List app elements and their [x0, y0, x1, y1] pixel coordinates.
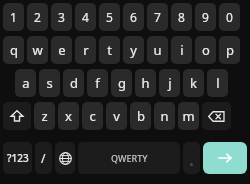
staticText: / [41, 150, 46, 166]
button[interactable]: ?123 [3, 142, 32, 174]
staticText: f [95, 74, 100, 92]
button[interactable]: 4 [75, 3, 96, 31]
staticText: 4 [82, 9, 89, 25]
staticText: w [32, 41, 43, 59]
staticText: b [137, 107, 145, 125]
button[interactable]: Backspace [202, 102, 231, 130]
staticText: p [226, 41, 234, 59]
button[interactable]: m [178, 102, 199, 130]
button[interactable]: f [87, 69, 108, 97]
button[interactable]: w [27, 36, 48, 64]
button[interactable]: Period [183, 142, 200, 174]
staticText: z [41, 107, 48, 125]
staticText: o [202, 41, 210, 59]
staticText: e [58, 41, 66, 59]
button[interactable]: s [39, 69, 60, 97]
button[interactable]: u [147, 36, 168, 64]
button[interactable]: a [15, 69, 36, 97]
button[interactable]: 0 [219, 3, 240, 31]
staticText: l [216, 74, 220, 92]
button[interactable]: e [51, 36, 72, 64]
button[interactable]: Shift [3, 102, 31, 130]
button[interactable]: i [171, 36, 192, 64]
staticText: k [190, 74, 197, 92]
button[interactable]: o [195, 36, 216, 64]
staticText: u [153, 41, 162, 59]
staticText: 9 [202, 9, 209, 25]
staticText: 8 [178, 9, 185, 25]
button[interactable]: n [154, 102, 175, 130]
button[interactable]: k [183, 69, 204, 97]
button[interactable]: c [82, 102, 103, 130]
button[interactable]: 6 [123, 3, 144, 31]
staticText: y [130, 41, 137, 59]
button[interactable]: Enter [203, 142, 247, 174]
staticText: n [160, 107, 169, 125]
staticText: r [83, 41, 89, 59]
button[interactable]: 1 [3, 3, 24, 31]
staticText: 0 [226, 9, 233, 25]
staticText: QWERTY [111, 152, 148, 164]
staticText: 2 [34, 9, 41, 25]
button[interactable]: t [99, 36, 120, 64]
staticText: v [113, 107, 120, 125]
button[interactable]: j [159, 69, 180, 97]
staticText: x [65, 107, 72, 125]
button[interactable]: p [219, 36, 240, 64]
staticText: t [107, 41, 112, 59]
staticText: m [182, 107, 195, 125]
button[interactable]: 8 [171, 3, 192, 31]
staticText: q [10, 41, 18, 59]
button[interactable]: 9 [195, 3, 216, 31]
button[interactable]: h [135, 69, 156, 97]
button[interactable]: QWERTY [78, 142, 180, 174]
button[interactable]: x [58, 102, 79, 130]
button[interactable]: b [130, 102, 151, 130]
staticText: s [46, 74, 53, 92]
button[interactable]: 2 [27, 3, 48, 31]
button[interactable]: l [207, 69, 228, 97]
button[interactable]: v [106, 102, 127, 130]
button[interactable]: 3 [51, 3, 72, 31]
button[interactable]: / [35, 142, 52, 174]
staticText: a [22, 74, 30, 92]
staticText: h [141, 74, 150, 92]
button[interactable]: 5 [99, 3, 120, 31]
staticText: d [70, 74, 78, 92]
staticText: 7 [154, 9, 161, 25]
staticText: 1 [10, 9, 17, 25]
staticText: ?123 [7, 151, 29, 165]
staticText: i [180, 41, 184, 59]
staticText: 6 [130, 9, 137, 25]
button[interactable]: d [63, 69, 84, 97]
button[interactable]: y [123, 36, 144, 64]
staticText: c [89, 107, 96, 125]
button[interactable]: Change language [55, 142, 75, 174]
button[interactable]: r [75, 36, 96, 64]
staticText: 5 [106, 9, 113, 25]
button[interactable]: g [111, 69, 132, 97]
staticText: j [168, 74, 172, 92]
staticText: 3 [58, 9, 65, 25]
button[interactable]: 7 [147, 3, 168, 31]
button[interactable]: q [3, 36, 24, 64]
staticText: g [118, 74, 126, 92]
button[interactable]: z [34, 102, 55, 130]
